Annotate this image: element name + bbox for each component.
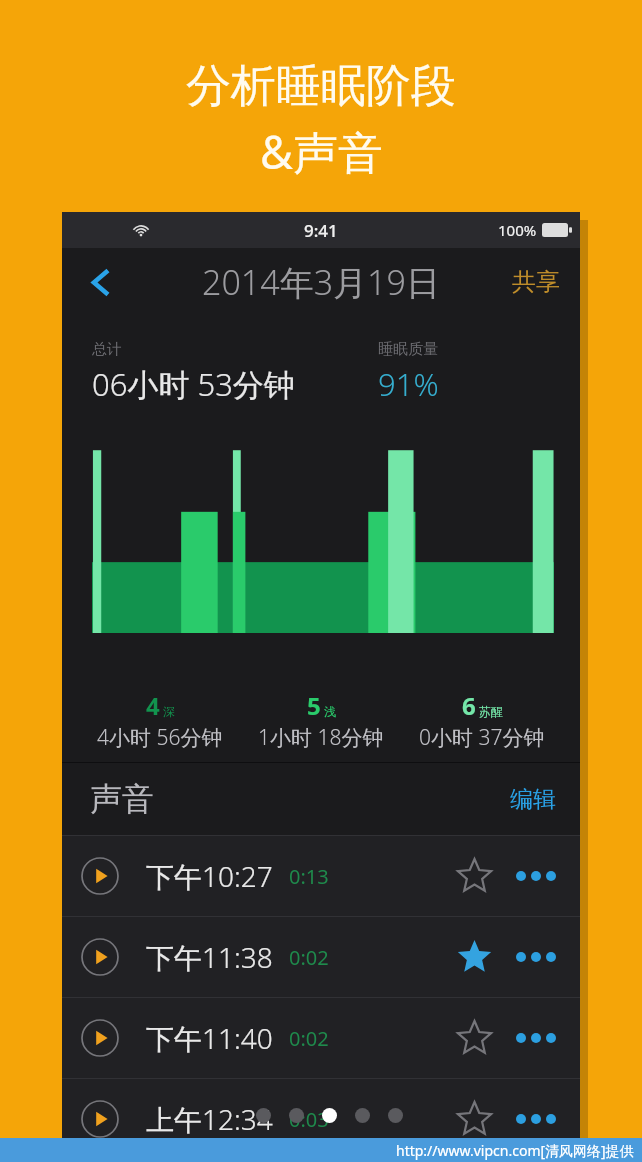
button[interactable]: Play — [78, 1016, 122, 1060]
staticText: 分析睡眠阶段 — [186, 58, 456, 115]
staticText: 1小时 18分钟 — [258, 723, 384, 752]
staticText: 0:02 — [289, 1025, 329, 1052]
staticText: 苏醒 — [479, 704, 503, 719]
staticText: 100% — [498, 220, 537, 240]
button[interactable]: More options — [504, 933, 568, 981]
staticText: 2014年3月19日 — [202, 259, 440, 305]
staticText: 4小时 56分钟 — [97, 723, 223, 752]
staticText: 0:03 — [289, 1106, 329, 1133]
staticText: 声音 — [90, 779, 154, 819]
button[interactable]: Favorite — [450, 1014, 498, 1062]
button[interactable]: Play — [62, 998, 580, 1078]
staticText: 编辑 — [510, 785, 556, 814]
button[interactable]: Back — [78, 259, 124, 305]
staticText: 0:13 — [289, 863, 329, 890]
staticText: 共享 — [512, 267, 560, 297]
staticText: 6 — [462, 689, 476, 722]
button[interactable]: 共享 — [506, 261, 566, 303]
staticText: http://www.vipcn.com[清风网络]提供 — [396, 1141, 634, 1160]
button[interactable]: Play — [78, 854, 122, 898]
button[interactable]: Favorite — [450, 1095, 498, 1143]
staticText: 总计 — [92, 340, 122, 359]
staticText: 06小时 53分钟 — [92, 363, 295, 405]
button[interactable]: Play — [78, 935, 122, 979]
button[interactable]: Favorite — [450, 933, 498, 981]
staticText: &声音 — [260, 121, 383, 182]
staticText: 91% — [378, 363, 439, 405]
button[interactable]: Play — [62, 917, 580, 997]
staticText: 浅 — [324, 704, 336, 719]
button[interactable]: Play — [62, 1079, 580, 1159]
staticText: 下午11:40 — [146, 1019, 273, 1057]
staticText: 睡眠质量 — [378, 340, 438, 359]
staticText: 9:41 — [304, 219, 338, 242]
staticText: 4 — [146, 689, 160, 722]
button[interactable]: Play — [78, 1097, 122, 1141]
button[interactable]: Play — [62, 836, 580, 916]
staticText: 0:02 — [289, 944, 329, 971]
button[interactable]: More options — [504, 1014, 568, 1062]
staticText: 深 — [163, 704, 175, 719]
button[interactable]: More options — [504, 852, 568, 900]
button[interactable]: Favorite — [450, 852, 498, 900]
button[interactable]: More options — [504, 1095, 568, 1143]
staticText: 下午10:27 — [146, 857, 273, 895]
staticText: 0小时 37分钟 — [419, 723, 545, 752]
staticText: 上午12:34 — [146, 1100, 273, 1138]
staticText: 5 — [307, 689, 321, 722]
button[interactable]: 编辑 — [504, 779, 562, 820]
staticText: 下午11:38 — [146, 938, 273, 976]
